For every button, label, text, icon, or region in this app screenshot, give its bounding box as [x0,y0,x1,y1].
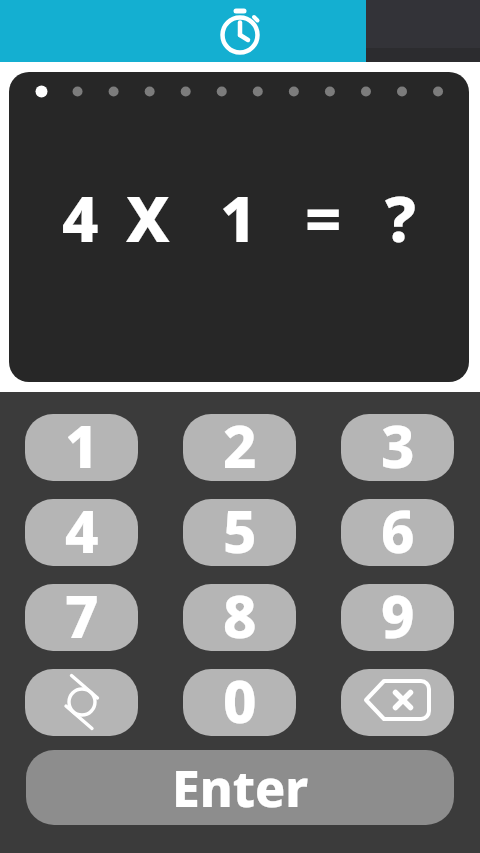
button[interactable]: 2 [183,414,296,481]
button[interactable]: 4 [25,499,138,566]
button[interactable]: 6 [341,499,454,566]
staticText: 8 [223,584,257,643]
button[interactable]: 5 [183,499,296,566]
staticText: X [126,175,170,261]
button[interactable]: 3 [341,414,454,481]
button[interactable]: 7 [25,584,138,651]
staticText: 4 [65,499,99,558]
staticText: 1 [220,175,257,261]
button[interactable]: 1 [25,414,138,481]
button[interactable] [341,669,454,736]
staticText: 4 [62,175,99,261]
button[interactable]: 0 [183,669,296,736]
button[interactable]: Enter [26,750,454,825]
staticText: 5 [223,499,257,558]
staticText: 0 [223,669,257,728]
staticText: 2 [223,414,257,473]
staticText: 7 [65,584,99,643]
button[interactable]: 9 [341,584,454,651]
staticText: Enter [172,754,309,822]
button[interactable] [25,669,138,736]
staticText: 9 [381,584,415,643]
staticText: 3 [381,414,415,473]
staticText: 6 [381,499,415,558]
staticText: = [305,175,342,261]
staticText: 1 [65,414,99,473]
button[interactable]: 8 [183,584,296,651]
staticText: ? [385,175,416,261]
